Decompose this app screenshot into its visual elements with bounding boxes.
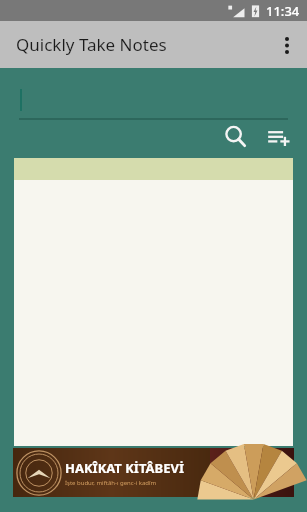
button[interactable]	[14, 158, 293, 446]
staticText: Quickly Take Notes	[16, 33, 167, 56]
staticText: 11:34	[266, 2, 300, 20]
staticText: İşte budur, miftâh-ı genc-i kadîm	[65, 479, 157, 487]
button[interactable]: Advertisement	[13, 448, 294, 497]
button[interactable]	[19, 80, 288, 120]
staticText: HAKÎKAT KİTÂBEVİ	[65, 459, 184, 477]
button[interactable]: Search	[219, 120, 253, 154]
button[interactable]: Add note	[261, 120, 295, 154]
button[interactable]: More options	[267, 25, 307, 65]
